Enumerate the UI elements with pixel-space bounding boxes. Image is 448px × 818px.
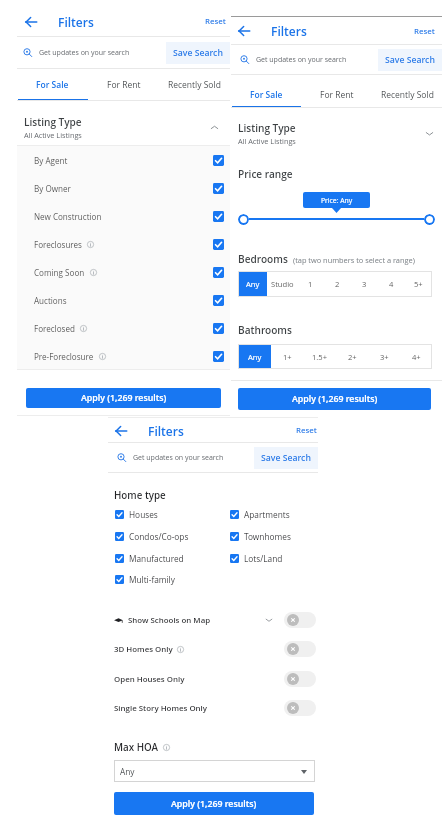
button[interactable]: Any [238,271,267,297]
button[interactable]: Toggle off [284,671,316,687]
staticText: For Rent [320,89,354,101]
button[interactable]: Recently Sold [372,75,442,108]
button[interactable]: Manufactured [115,548,184,568]
staticText: Bathrooms [238,323,292,337]
staticText: By Agent [34,155,68,166]
staticText: Get updates on your search [133,453,224,463]
button[interactable]: 1 [297,271,324,297]
staticText: Multi-family [129,574,175,585]
button[interactable]: Reset [205,13,230,30]
button[interactable]: Save Search [254,447,318,469]
staticText: 2 [335,279,340,289]
staticText: Price range [238,167,293,181]
button[interactable]: Reset [414,23,442,40]
button[interactable]: 4 [378,271,405,297]
button[interactable]: Apply (1,269 results) [26,388,221,408]
button[interactable]: Auctions [34,286,224,314]
button[interactable]: Maximum price [424,214,435,225]
button[interactable]: Show Schools on Map [114,608,316,632]
button[interactable]: Studio [267,271,297,297]
button[interactable]: Back [112,422,130,440]
button[interactable]: 3D Homes Only [114,637,316,661]
button[interactable]: Foreclosures [34,230,224,258]
button[interactable]: Toggle off [284,700,316,716]
button[interactable]: 4+ [400,344,432,369]
staticText: For Rent [107,79,141,91]
button[interactable]: For Sale [231,75,302,108]
button[interactable]: Any [238,344,271,369]
button[interactable]: Recently Sold [159,69,230,101]
staticText: 4 [389,279,394,289]
staticText: Max HOA [114,741,159,754]
staticText: All Active Listings [24,130,82,140]
staticText: 1.5+ [312,352,328,362]
button[interactable]: Foreclosed [34,314,224,342]
staticText: Listing Type [24,115,82,129]
staticText: Pre-Foreclosure [34,351,94,362]
button[interactable]: For Rent [88,69,159,101]
staticText: (tap two numbers to select a range) [293,255,415,265]
staticText: By Owner [34,183,71,194]
button[interactable]: For Rent [302,75,372,108]
button[interactable]: Single Story Homes Only [114,696,316,720]
staticText: Any [246,279,260,289]
button[interactable]: Apply (1,269 results) [114,792,314,815]
staticText: Foreclosed [34,323,75,334]
button[interactable]: Condos/Co-ops [115,526,189,546]
staticText: Reset [205,16,226,27]
button[interactable]: Toggle off [284,612,316,628]
button[interactable]: Save Search [166,42,230,64]
button[interactable]: For Sale [17,69,88,101]
button[interactable]: 5+ [405,271,432,297]
button[interactable]: Multi-family [115,569,175,589]
staticText: Home type [114,489,166,502]
button[interactable]: Lots/Land [230,548,283,568]
button[interactable]: Minimum price [238,214,249,225]
button[interactable]: Back [22,13,40,31]
button[interactable]: Apartments [230,504,290,524]
button[interactable]: New Construction [34,202,224,230]
button[interactable]: Save Search [378,49,442,71]
staticText: For Sale [36,79,69,91]
staticText: Filters [271,23,307,39]
button[interactable]: Listing Type [24,109,219,145]
staticText: For Sale [250,89,283,101]
other: Back [25,16,37,28]
staticText: Condos/Co-ops [129,531,189,542]
button[interactable]: 1.5+ [304,344,336,369]
staticText: Price: Any [321,196,353,205]
staticText: Recently Sold [168,79,221,91]
button[interactable]: By Agent [34,146,224,174]
button[interactable]: Pre-Foreclosure [34,342,224,370]
staticText: Show Schools on Map [128,615,211,626]
button[interactable]: Houses [115,504,158,524]
button[interactable]: Coming Soon [34,258,224,286]
staticText: Recently Sold [381,89,434,101]
staticText: Save Search [385,54,435,66]
staticText: 5+ [414,279,423,289]
staticText: Apply (1,269 results) [292,393,378,405]
button[interactable]: Open Houses Only [114,667,316,691]
button[interactable]: 3+ [368,344,400,369]
staticText: New Construction [34,211,102,222]
button[interactable]: 3 [351,271,378,297]
button[interactable]: By Owner [34,174,224,202]
other: Back [115,425,127,437]
staticText: Houses [129,509,158,520]
button[interactable]: 1+ [271,344,304,369]
button[interactable]: Back [235,22,253,40]
button[interactable]: Apply (1,269 results) [238,388,431,410]
staticText: 1 [308,279,313,289]
button[interactable]: 2+ [336,344,368,369]
staticText: 3 [362,279,367,289]
button[interactable]: 2 [324,271,351,297]
staticText: Manufactured [129,553,184,564]
staticText: Save Search [173,47,223,59]
button[interactable]: Reset [296,422,318,439]
button[interactable]: Listing Type [238,119,434,147]
staticText: Apartments [244,509,290,520]
staticText: All Active Listings [238,136,296,146]
button[interactable]: Townhomes [230,526,291,546]
button[interactable]: Toggle off [284,641,316,657]
button[interactable]: Any [114,760,315,782]
